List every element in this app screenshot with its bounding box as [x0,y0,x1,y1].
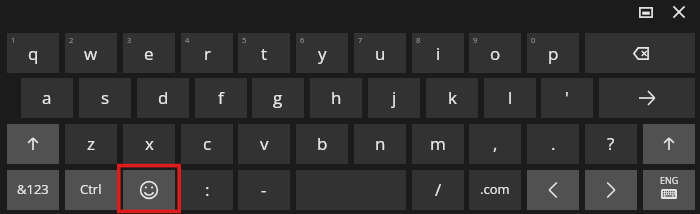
button[interactable]: / [412,170,464,210]
button[interactable]: Enter [599,78,695,118]
button[interactable]: f [195,78,247,118]
button[interactable]: m [412,124,464,164]
staticText: 3 [127,35,132,45]
button[interactable]: , [469,124,521,164]
staticText: i [436,42,441,65]
button[interactable]: &123 [7,170,59,210]
button[interactable]: Shift [643,124,695,164]
button[interactable]: Change language, English [643,170,695,210]
button[interactable]: 1 [7,33,59,73]
button[interactable]: l [484,78,536,118]
button[interactable]: 3 [123,33,175,73]
button[interactable]: 9 [469,33,521,73]
button[interactable]: 0 [527,33,579,73]
staticText: s [101,86,110,109]
staticText: 9 [473,35,478,45]
button[interactable]: Backspace [585,33,695,73]
button[interactable]: Ctrl [65,170,117,210]
staticText: z [87,132,95,155]
staticText: b [317,132,328,155]
button[interactable]: v [238,124,290,164]
button[interactable]: ' [541,78,593,118]
button[interactable]: b [296,124,348,164]
staticText: 2 [69,35,74,45]
staticText: u [375,42,386,65]
button[interactable]: - [238,170,290,210]
button[interactable]: Previous [527,170,579,210]
staticText: e [144,42,154,65]
staticText: g [273,86,283,109]
staticText: k [448,86,457,109]
staticText: c [203,132,212,155]
staticText: l [508,86,513,109]
button[interactable]: Dock keyboard [632,1,660,23]
staticText: 7 [358,35,363,45]
staticText: 0 [531,35,536,45]
staticText: o [490,42,501,65]
button[interactable]: h [310,78,362,118]
button[interactable]: Close [665,0,693,24]
button[interactable]: n [354,124,406,164]
button[interactable]: Emoji [123,170,175,210]
button[interactable]: ? [585,124,637,164]
button[interactable]: z [65,124,117,164]
staticText: / [435,178,442,201]
button[interactable]: : [181,170,233,210]
staticText: . [551,132,556,155]
staticText: , [493,132,498,155]
staticText: - [261,178,267,201]
staticText: &123 [17,180,49,198]
button[interactable]: g [252,78,304,118]
staticText: h [331,86,342,109]
button[interactable]: c [181,124,233,164]
button[interactable]: 7 [354,33,406,73]
button[interactable]: s [79,78,131,118]
staticText: .com [480,180,510,198]
staticText: j [392,86,397,109]
staticText: 1 [11,35,16,45]
button[interactable]: . [527,124,579,164]
staticText: n [375,132,386,155]
staticText: t [261,42,268,65]
button[interactable]: 5 [238,33,290,73]
button[interactable]: a [21,78,73,118]
button[interactable]: 8 [412,33,464,73]
button[interactable]: k [426,78,478,118]
staticText: x [145,132,154,155]
staticText: v [260,132,269,155]
button[interactable]: j [368,78,420,118]
button[interactable]: Next [585,170,637,210]
staticText: 5 [242,35,247,45]
staticText: : [205,178,210,201]
button[interactable]: x [123,124,175,164]
staticText: f [218,86,224,109]
staticText: q [28,42,39,65]
staticText: r [204,42,211,65]
staticText: ' [565,86,569,109]
button[interactable]: 2 [65,33,117,73]
staticText: ? [607,132,615,155]
staticText: y [318,42,327,65]
staticText: 6 [300,35,305,45]
staticText: 8 [416,35,421,45]
staticText: ENG [660,174,679,186]
staticText: m [430,132,446,155]
button[interactable]: d [137,78,189,118]
button[interactable]: 4 [181,33,233,73]
staticText: 4 [185,35,190,45]
staticText: Ctrl [80,180,102,198]
staticText: w [84,42,98,65]
staticText: p [548,42,559,65]
staticText: a [42,86,52,109]
button[interactable]: .com [469,170,521,210]
button[interactable]: Shift [7,124,59,164]
button[interactable]: 6 [296,33,348,73]
staticText: d [158,86,169,109]
